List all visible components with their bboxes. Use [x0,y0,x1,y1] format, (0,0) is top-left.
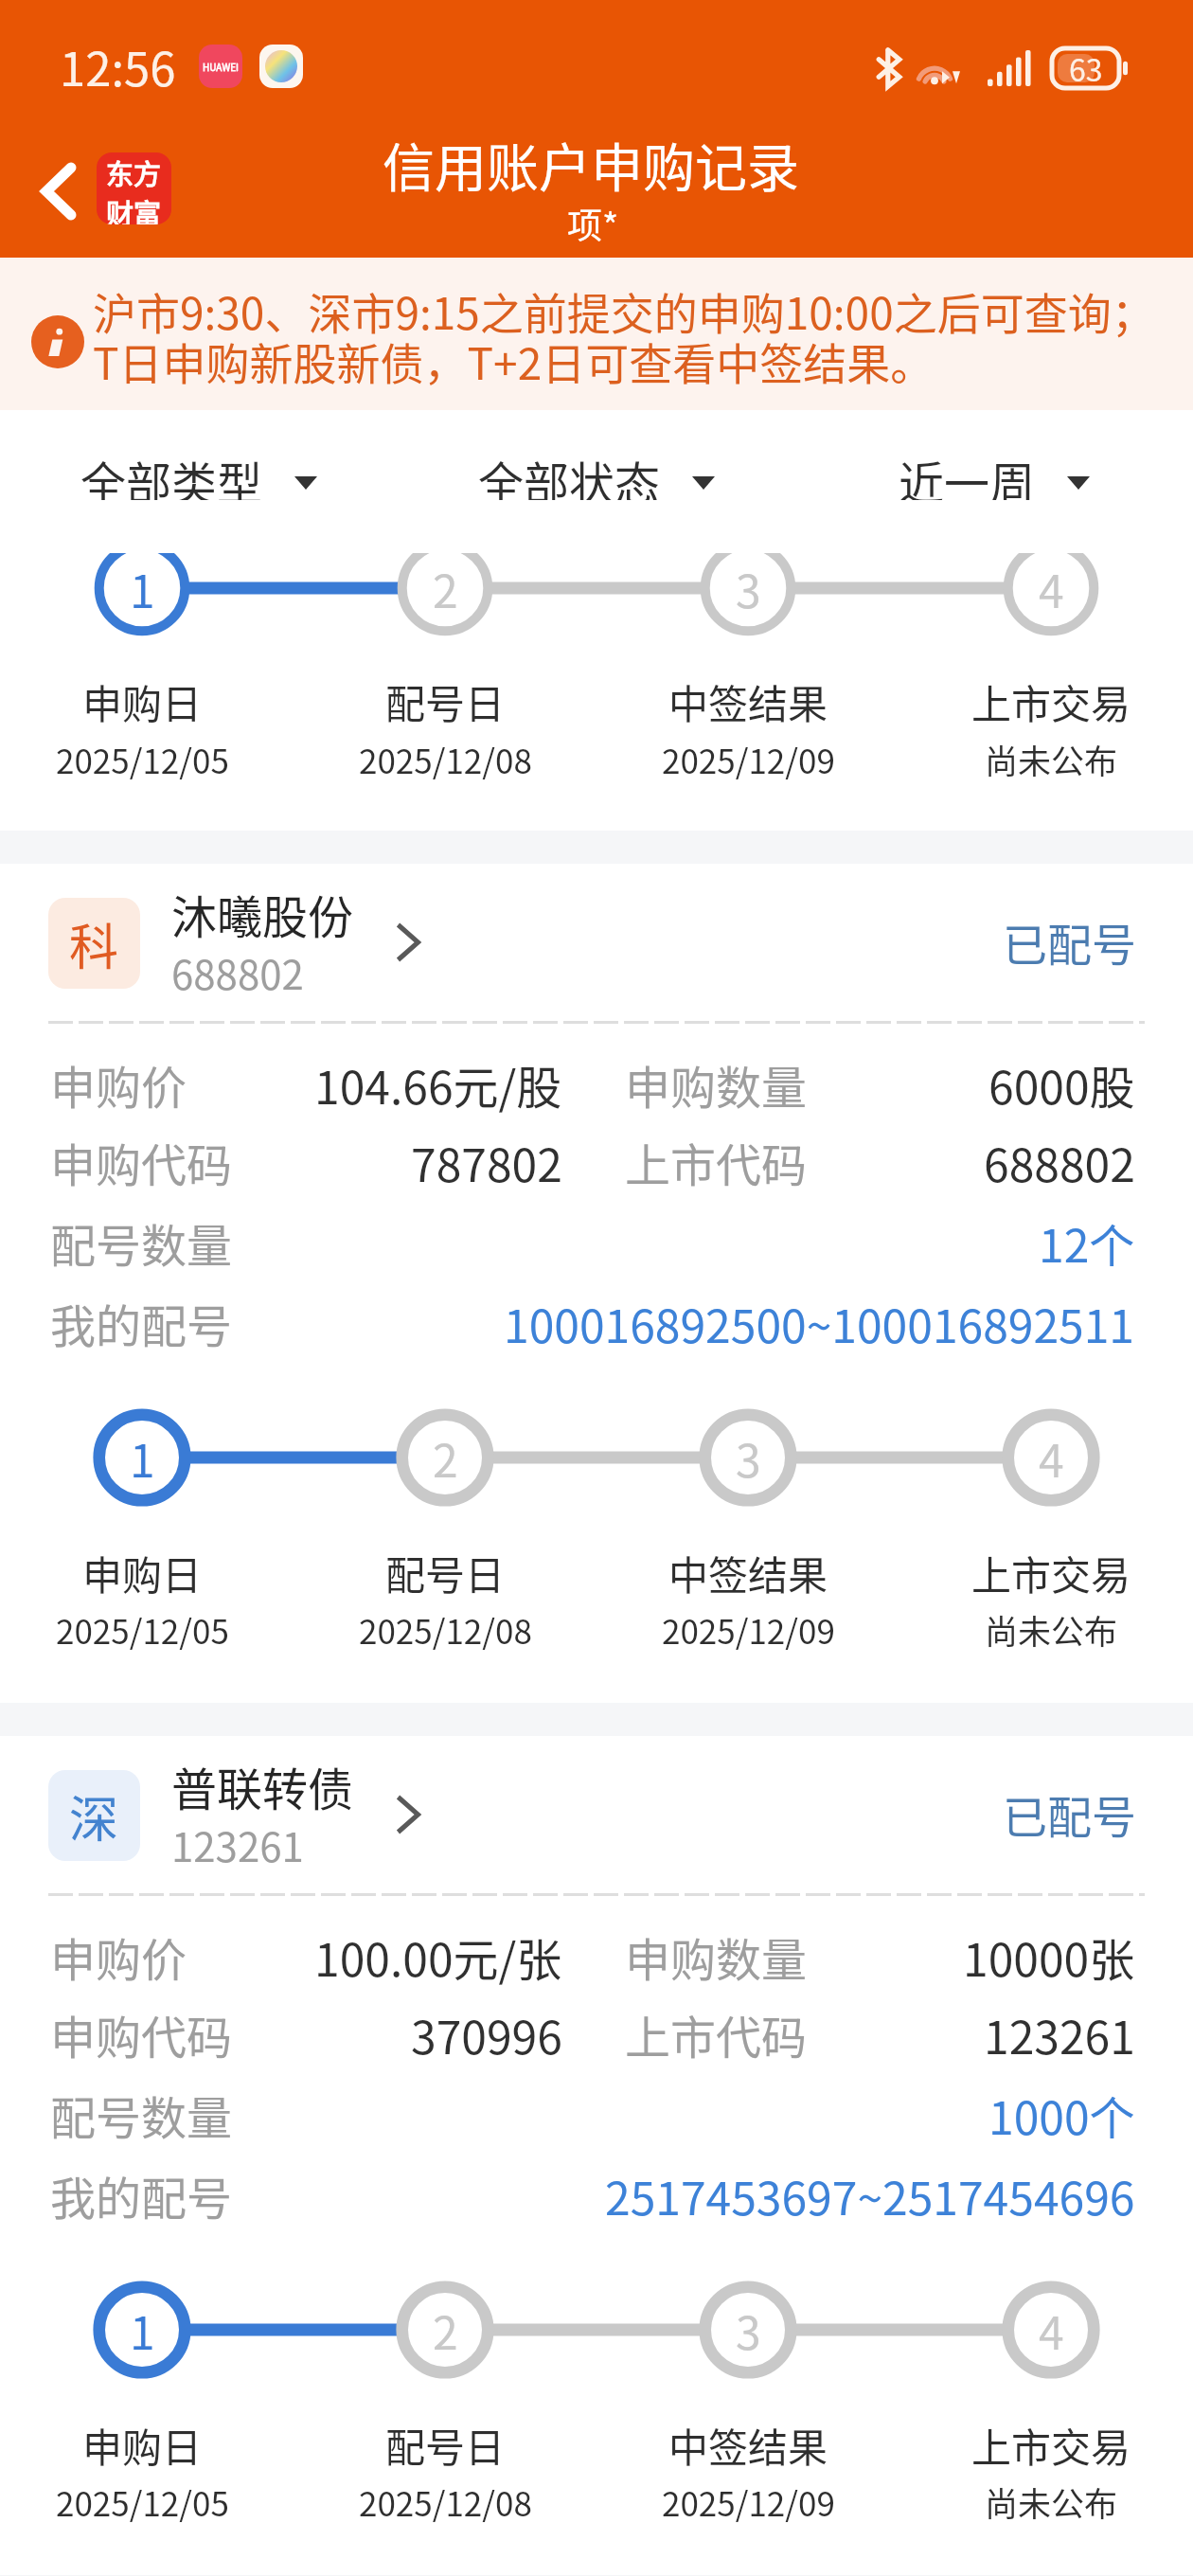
staticText: 已配号 [1003,1781,1136,1846]
button[interactable]: 科 [0,864,1193,1703]
staticText: 近一周 [899,447,1036,500]
button[interactable]: Open detail [379,1785,437,1844]
button[interactable]: East Money [97,152,171,224]
staticText: 10000张 [963,1923,1135,1990]
staticText: 2025/12/09 [662,1605,835,1654]
staticText: 3 [736,2297,761,2363]
staticText: 申购日 [82,672,203,730]
staticText: 4 [1039,2297,1064,2363]
staticText: 2 [433,555,458,621]
staticText: 中签结果 [668,2416,828,2474]
staticText: 1 [130,1424,155,1491]
button[interactable]: 深 [0,1736,1193,2575]
staticText: 尚未公布 [985,735,1118,783]
staticText: 688802 [984,1129,1135,1195]
staticText: 2025/12/05 [56,2478,229,2526]
staticText: 2517453697~2517454696 [605,2162,1135,2228]
staticText: 申购代码 [50,2001,233,2067]
staticText: 沪市9:30、深市9:15之前提交的申购10:00之后可查询； [93,279,1155,343]
staticText: 2025/12/08 [359,1605,532,1654]
staticText: 中签结果 [668,672,828,730]
staticText: 信用账户申购记录 [383,126,800,202]
staticText: 科 [69,908,119,979]
staticText: 上市交易 [971,672,1131,730]
staticText: 123261 [171,1816,304,1873]
staticText: 申购价 [50,1051,187,1118]
button[interactable]: 全部状态 [467,439,726,508]
staticText: 1 [130,555,155,621]
staticText: 尚未公布 [985,1605,1118,1654]
staticText: 2025/12/08 [359,735,532,783]
staticText: T日申购新股新债，T+2日可查看中签结果。 [93,330,935,393]
staticText: 全部类型 [80,447,263,500]
staticText: 100016892500~100016892511 [504,1290,1135,1356]
staticText: 3 [736,555,761,621]
staticText: 1000个 [988,2082,1135,2148]
button[interactable]: Back [6,138,112,244]
staticText: 4 [1039,555,1064,621]
staticText: 中签结果 [668,1544,828,1601]
staticText: 普联转债 [171,1753,354,1819]
staticText: 2 [433,2297,458,2363]
staticText: 深 [69,1780,119,1851]
staticText: 配号数量 [50,2082,233,2148]
staticText: 申购数量 [625,1051,808,1118]
staticText: 63 [1069,46,1103,90]
staticText: 申购数量 [625,1923,808,1990]
staticText: 配号日 [385,2416,506,2474]
staticText: 财富 [106,192,162,224]
staticText: 申购代码 [50,1129,233,1195]
staticText: 2025/12/05 [56,1605,229,1654]
staticText: 2025/12/09 [662,735,835,783]
staticText: 6000股 [988,1051,1135,1118]
staticText: 我的配号 [50,2162,233,2228]
staticText: 100.00元/张 [314,1923,562,1990]
staticText: 4 [1039,1424,1064,1491]
staticText: 上市交易 [971,2416,1131,2474]
staticText: 东方 [106,152,162,192]
button[interactable]: 近一周 [887,439,1101,508]
button[interactable]: 全部类型 [69,439,329,508]
staticText: 上市代码 [625,1129,808,1195]
staticText: 370996 [411,2001,562,2067]
staticText: 配号日 [385,672,506,730]
staticText: 申购日 [82,2416,203,2474]
staticText: 787802 [411,1129,562,1195]
staticText: 2025/12/08 [359,2478,532,2526]
staticText: 688802 [171,943,304,1001]
staticText: 已配号 [1003,909,1136,974]
staticText: 配号日 [385,1544,506,1601]
staticText: 1 [130,2297,155,2363]
staticText: 2025/12/09 [662,2478,835,2526]
staticText: 123261 [984,2001,1135,2067]
staticText: HUAWEI [203,60,239,73]
staticText: 104.66元/股 [314,1051,562,1118]
staticText: 申购价 [50,1923,187,1990]
staticText: 12:56 [60,32,176,99]
button[interactable]: Open detail [379,913,437,972]
staticText: 3 [736,1424,761,1491]
staticText: 我的配号 [50,1290,233,1356]
staticText: 上市代码 [625,2001,808,2067]
staticText: 沐曦股份 [171,881,354,947]
staticText: 2 [433,1424,458,1491]
staticText: 尚未公布 [985,2478,1118,2526]
staticText: 2025/12/05 [56,735,229,783]
staticText: 配号数量 [50,1209,233,1276]
staticText: 上市交易 [971,1544,1131,1601]
staticText: 项* [567,198,619,249]
staticText: 申购日 [82,1544,203,1601]
staticText: 12个 [1039,1209,1135,1276]
staticText: 全部状态 [478,447,661,500]
